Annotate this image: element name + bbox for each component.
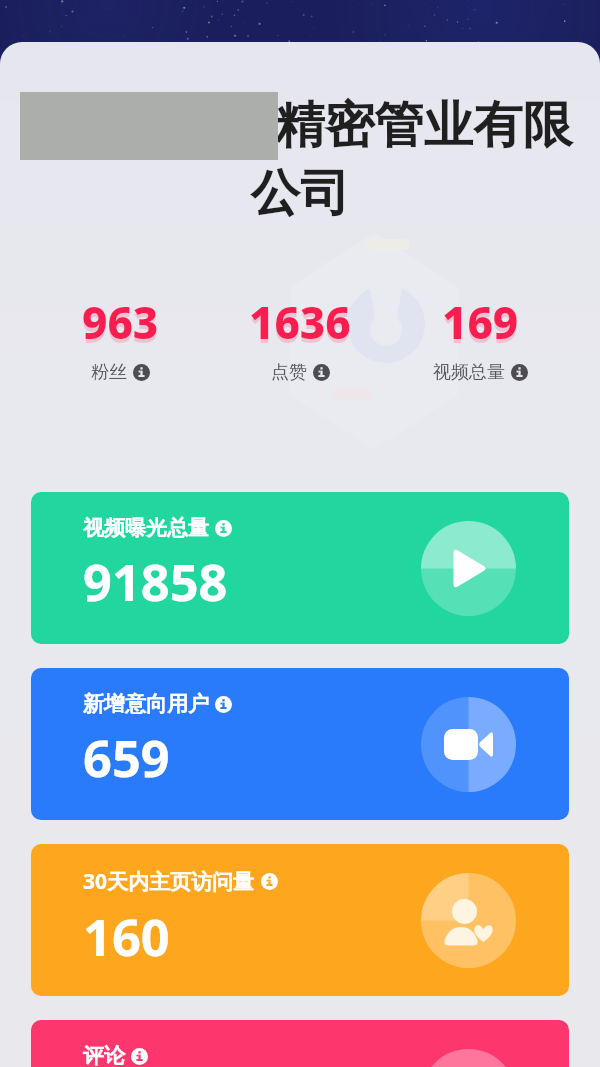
staticText: 160 [83, 902, 170, 971]
button[interactable]: 963 [30, 292, 210, 384]
other: Comments [421, 1049, 516, 1067]
staticText: 963 [82, 296, 159, 356]
staticText: 华洋晨星通精密管业有限公司 [22, 94, 578, 224]
staticText: 视频曝光总量 [83, 515, 209, 541]
staticText: 评论 [83, 1043, 125, 1067]
button[interactable]: 30天内主页访问量 [31, 844, 569, 996]
other: Video [421, 697, 516, 792]
staticText: 169 [442, 296, 519, 356]
staticText: 169 [442, 292, 519, 352]
staticText: 30天内主页访问量 [83, 867, 255, 896]
staticText: 1636 [249, 296, 351, 356]
other: Play [421, 521, 516, 616]
button[interactable]: 视频曝光总量 [31, 492, 569, 644]
button[interactable]: 评论 [31, 1020, 569, 1067]
staticText: 1636 [249, 292, 351, 352]
button[interactable]: 1636 [210, 292, 390, 384]
staticText: 963 [82, 292, 159, 352]
staticText: 视频总量 [433, 361, 505, 384]
button[interactable]: 新增意向用户 [31, 668, 569, 820]
staticText: 粉丝 [91, 361, 127, 384]
staticText: 91858 [83, 547, 228, 616]
staticText: 点赞 [271, 361, 307, 384]
button[interactable]: 169 [390, 292, 570, 384]
other: Visitors [421, 873, 516, 968]
staticText: 新增意向用户 [83, 691, 209, 717]
staticText: 659 [83, 723, 170, 792]
